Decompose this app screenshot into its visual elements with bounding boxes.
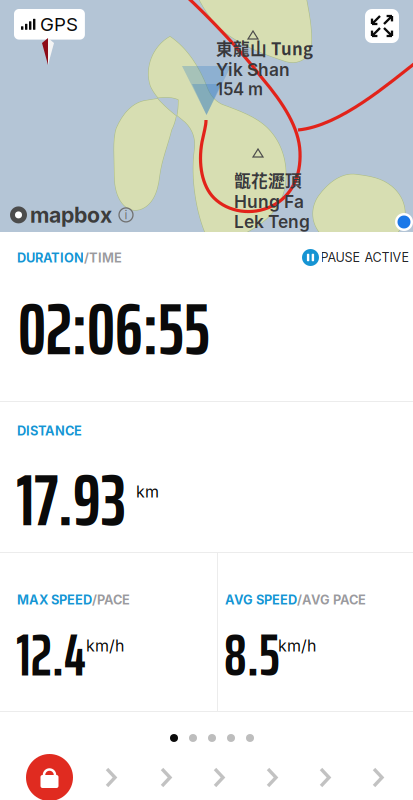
staticText: 17.93 xyxy=(16,442,126,557)
staticText: /PACE xyxy=(92,592,130,607)
staticText: 8.5 xyxy=(224,609,280,701)
staticText: 02:06:55 xyxy=(18,271,210,386)
staticText: MAX SPEED xyxy=(17,592,92,607)
staticText: Yik Shan xyxy=(216,59,290,80)
button[interactable]: Lock screen xyxy=(26,754,73,800)
staticText: km/h xyxy=(86,636,124,655)
staticText: mapbox xyxy=(30,202,112,228)
staticText: km/h xyxy=(278,636,316,655)
button[interactable]: PAUSE ACTIVE xyxy=(302,249,409,266)
staticText: km xyxy=(136,482,159,501)
staticText: i xyxy=(124,208,127,222)
staticText: 154 m xyxy=(216,79,263,99)
staticText: Hung Fa xyxy=(234,191,304,212)
staticText: Lek Teng xyxy=(234,211,310,232)
staticText: AVG SPEED xyxy=(225,592,297,607)
staticText: /TIME xyxy=(84,250,122,265)
staticText: 139 m xyxy=(234,231,282,251)
staticText: /AVG PACE xyxy=(297,592,366,607)
button[interactable]: Expand map xyxy=(365,9,399,43)
staticText: DISTANCE xyxy=(17,423,82,438)
staticText: DURATION xyxy=(17,250,84,265)
staticText: 東龍山 Tung xyxy=(216,36,313,60)
staticText: 12.4 xyxy=(16,609,86,701)
staticText: 甑花瀝頂 xyxy=(234,168,302,192)
staticText: PAUSE ACTIVE xyxy=(320,250,409,265)
staticText: GPS xyxy=(40,13,78,36)
